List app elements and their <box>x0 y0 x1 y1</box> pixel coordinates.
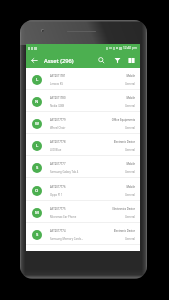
staticText: Mobile <box>126 74 135 78</box>
button[interactable]: O <box>26 179 140 201</box>
staticText: Mobile <box>126 96 135 100</box>
staticText: AST2017777 <box>50 162 66 166</box>
button[interactable]: Filter <box>110 54 125 67</box>
staticText: Mobile <box>126 185 135 189</box>
staticText: AST2017779 <box>50 118 66 122</box>
button[interactable]: S <box>26 223 140 245</box>
staticText: S <box>36 232 39 238</box>
staticText: Asset (296) <box>44 57 74 65</box>
staticText: Nokia 3288 <box>50 104 65 108</box>
button[interactable]: W <box>26 112 140 134</box>
staticText: AST2011780 <box>50 96 66 100</box>
staticText: AST2017778 <box>50 140 66 144</box>
staticText: General <box>125 193 135 197</box>
button[interactable]: L <box>26 68 140 90</box>
button[interactable]: Search <box>93 54 110 67</box>
button[interactable]: S <box>26 156 140 178</box>
staticText: Electronics Device <box>112 207 135 211</box>
button[interactable]: Back <box>30 56 39 65</box>
button[interactable]: L <box>26 134 140 156</box>
staticText: LED Blue <box>50 148 62 152</box>
staticText: S <box>36 165 39 171</box>
staticText: General <box>125 215 135 219</box>
staticText: L <box>36 77 39 83</box>
staticText: Samsung Galaxy Tab 4 <box>50 170 79 174</box>
staticText: Electronic Device <box>113 229 135 233</box>
staticText: AST2017775 <box>50 207 66 211</box>
staticText: Micromax Ear Phone <box>50 215 77 219</box>
button[interactable]: N <box>26 90 140 112</box>
staticText: General <box>125 126 135 130</box>
staticText: Wheel Chair <box>50 126 66 130</box>
staticText: AST2011781 <box>50 74 66 78</box>
staticText: Mobile <box>126 162 135 166</box>
staticText: W <box>35 121 39 127</box>
staticText: AST2017774 <box>50 229 66 233</box>
staticText: Samsung Memory Cards... <box>50 237 84 241</box>
button[interactable]: M <box>26 201 140 223</box>
staticText: General <box>125 82 135 86</box>
staticText: 12:40 pm <box>123 46 137 50</box>
staticText: L <box>36 143 39 149</box>
staticText: General <box>125 148 135 152</box>
staticText: AST2017776 <box>50 185 66 189</box>
staticText: M <box>35 210 39 216</box>
staticText: General <box>125 104 135 108</box>
staticText: O <box>35 188 39 194</box>
staticText: General <box>125 170 135 174</box>
staticText: Electronic Device <box>113 140 135 144</box>
button[interactable]: Sort <box>125 54 138 67</box>
staticText: Office Equipments <box>111 118 135 122</box>
staticText: Lenovo K5 <box>50 82 64 86</box>
staticText: N <box>35 99 39 105</box>
staticText: Oppo F11 <box>50 193 63 197</box>
staticText: General <box>125 237 135 241</box>
